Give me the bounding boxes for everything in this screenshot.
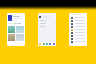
- button[interactable]: [71, 16, 85, 19]
- button[interactable]: Tab: [43, 43, 45, 45]
- button[interactable]: Tab: [46, 43, 48, 45]
- button[interactable]: Tab: [39, 43, 41, 45]
- button[interactable]: [8, 26, 15, 33]
- button[interactable]: [16, 26, 24, 33]
- button[interactable]: [71, 28, 85, 31]
- button[interactable]: [8, 15, 24, 21]
- button[interactable]: [71, 40, 85, 43]
- button[interactable]: [16, 34, 24, 41]
- button[interactable]: Tab: [49, 43, 51, 45]
- button[interactable]: [71, 34, 85, 37]
- button[interactable]: [71, 37, 85, 40]
- button[interactable]: Tab: [53, 43, 55, 45]
- button[interactable]: [71, 25, 85, 28]
- button[interactable]: [71, 19, 85, 22]
- button[interactable]: [8, 34, 15, 41]
- button[interactable]: [71, 31, 85, 34]
- button[interactable]: [71, 22, 85, 25]
- button[interactable]: Menu: [39, 16, 41, 18]
